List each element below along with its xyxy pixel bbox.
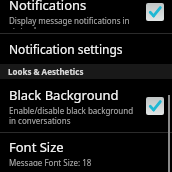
button[interactable]: Notifications [0,0,172,33]
staticText: Notifications [9,0,87,14]
button[interactable]: Black Background [146,97,164,115]
staticText: Font Size [9,138,64,156]
staticText: Notification settings [9,41,123,57]
button[interactable]: Notifications [146,3,164,21]
staticText: Display message notifications in status … [9,15,140,29]
button[interactable]: Black Background [0,84,172,130]
staticText: Black Background [9,86,119,104]
staticText: Looks & Aesthetics [8,66,84,77]
staticText: Message Font Size: 18 [9,157,92,166]
button[interactable]: Font Size [0,133,172,172]
staticText: Enable/disable black background in conve… [9,105,140,126]
